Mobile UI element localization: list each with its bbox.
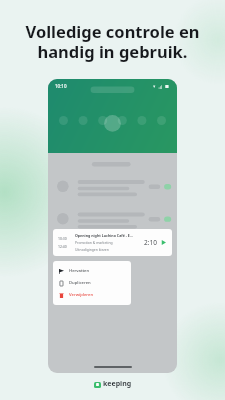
button[interactable]: Play timer xyxy=(160,239,167,246)
button[interactable]: Verwijderen xyxy=(53,289,131,301)
button[interactable]: 10:30 xyxy=(53,229,172,256)
button[interactable]: Hervatten xyxy=(53,265,131,277)
button[interactable]: keeping xyxy=(94,379,132,389)
staticText: Opening night Luchino Café - E... xyxy=(75,233,133,238)
staticText: Hervatten xyxy=(69,268,90,274)
staticText: 12:40 xyxy=(58,244,67,249)
staticText: Volledige controle en handig in gebruik. xyxy=(0,20,225,63)
staticText: keeping xyxy=(103,379,132,389)
staticText: Uitnodigingen kiezen xyxy=(75,247,109,252)
staticText: Promotion & marketing xyxy=(75,240,113,245)
staticText: 2:10 xyxy=(144,238,157,247)
staticText: Dupliceren xyxy=(69,280,91,286)
staticText: Verwijderen xyxy=(69,292,94,298)
staticText: 10:10 xyxy=(55,83,67,89)
staticText: 10:30 xyxy=(58,236,67,241)
button[interactable]: Dupliceren xyxy=(53,277,131,289)
